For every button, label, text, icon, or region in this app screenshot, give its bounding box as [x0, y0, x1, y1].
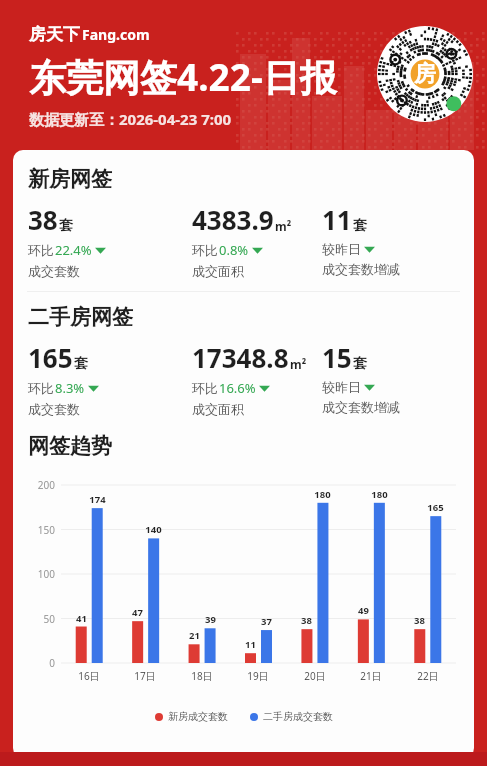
staticText: 17日: [117, 669, 173, 683]
staticText: 165: [28, 340, 73, 375]
button[interactable]: 4383.9: [192, 202, 322, 279]
staticText: 38: [405, 614, 434, 627]
staticText: 41: [67, 612, 96, 625]
staticText: 环比: [28, 242, 54, 258]
staticText: 38: [28, 202, 58, 237]
staticText: 0: [21, 656, 55, 670]
staticText: 套: [353, 355, 367, 373]
staticText: 17348.8: [192, 340, 289, 375]
staticText: 37: [252, 615, 281, 628]
button[interactable]: 扫码二维码: [377, 26, 473, 122]
staticText: 成交套数增减: [322, 261, 400, 277]
staticText: 较昨日: [322, 379, 361, 395]
staticText: 数据更新至：2026-04-23 7:00: [29, 109, 232, 129]
staticText: 50: [21, 612, 55, 626]
staticText: 成交套数: [28, 401, 80, 417]
staticText: 165: [421, 501, 450, 514]
staticText: 22.4%: [55, 241, 92, 259]
staticText: 150: [21, 523, 55, 537]
staticText: m²: [290, 356, 307, 372]
staticText: 11: [236, 638, 265, 651]
staticText: 套: [353, 217, 367, 235]
button[interactable]: 17348.8: [192, 340, 322, 417]
button[interactable]: 新房成交套数: [155, 710, 228, 723]
staticText: 174: [83, 493, 112, 506]
staticText: 39: [196, 613, 225, 626]
staticText: 200: [21, 478, 55, 492]
button[interactable]: 15: [322, 340, 460, 415]
staticText: 环比: [28, 380, 54, 396]
staticText: 15: [322, 340, 352, 375]
button[interactable]: 38: [28, 202, 192, 279]
staticText: 11: [322, 202, 352, 237]
staticText: 二手房网签: [28, 304, 133, 330]
staticText: 环比: [192, 242, 218, 258]
staticText: 140: [139, 523, 168, 536]
staticText: 套: [59, 217, 73, 235]
staticText: 47: [123, 606, 152, 619]
staticText: 22日: [400, 669, 456, 683]
staticText: 21: [180, 629, 209, 642]
staticText: 房天下: [29, 24, 80, 45]
staticText: 环比: [192, 380, 218, 396]
button[interactable]: 11: [322, 202, 460, 277]
staticText: 0.8%: [219, 241, 249, 259]
staticText: 成交套数: [28, 263, 80, 279]
staticText: 20日: [287, 669, 343, 683]
staticText: 新房网签: [28, 166, 112, 192]
staticText: Fang.com: [82, 25, 150, 44]
staticText: 较昨日: [322, 241, 361, 257]
button[interactable]: 扫码二维码: [377, 26, 473, 122]
staticText: 成交套数增减: [322, 399, 400, 415]
button[interactable]: 165: [28, 340, 192, 417]
staticText: 16.6%: [219, 379, 256, 397]
staticText: 东莞网签4.22-日报: [29, 51, 337, 102]
staticText: 网签趋势: [28, 433, 112, 459]
staticText: 100: [21, 567, 55, 581]
staticText: 新房成交套数: [168, 710, 228, 723]
staticText: 21日: [343, 669, 399, 683]
staticText: 19日: [230, 669, 286, 683]
staticText: 成交面积: [192, 263, 244, 279]
staticText: 180: [308, 488, 337, 501]
staticText: 8.3%: [55, 379, 85, 397]
staticText: 房: [414, 60, 436, 88]
staticText: 180: [365, 488, 394, 501]
button[interactable]: 二手房成交套数: [250, 710, 333, 723]
staticText: 4383.9: [192, 202, 274, 237]
staticText: 成交面积: [192, 401, 244, 417]
staticText: 18日: [174, 669, 230, 683]
staticText: 49: [349, 604, 378, 617]
staticText: 16日: [61, 669, 117, 683]
staticText: 二手房成交套数: [263, 710, 333, 723]
staticText: m²: [275, 218, 292, 234]
staticText: 套: [74, 355, 88, 373]
staticText: 38: [292, 614, 321, 627]
